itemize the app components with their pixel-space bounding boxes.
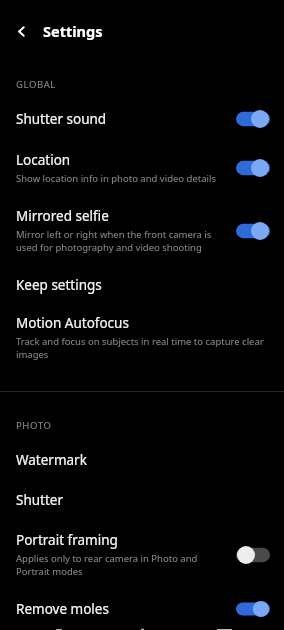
- button[interactable]: Shutter sound: [0, 103, 284, 141]
- staticText: Motion Autofocus: [16, 314, 129, 332]
- button[interactable]: Mirrored selfie: [0, 197, 284, 266]
- staticText: GLOBAL: [16, 78, 56, 91]
- button[interactable]: Remove moles: [0, 590, 284, 630]
- staticText: Remove moles: [16, 600, 109, 618]
- button[interactable]: [236, 221, 270, 241]
- staticText: Portrait framing: [16, 531, 118, 549]
- staticText: Mirrored selfie: [16, 207, 109, 225]
- staticText: Applies only to rear camera in Photo and…: [16, 552, 228, 578]
- button[interactable]: [236, 545, 270, 565]
- staticText: Mirror left or right when the front came…: [16, 228, 228, 254]
- button[interactable]: Watermark: [0, 445, 284, 481]
- button[interactable]: Motion Autofocus: [0, 306, 284, 373]
- button[interactable]: [236, 158, 270, 178]
- button[interactable]: Location: [0, 141, 284, 197]
- button[interactable]: Shutter: [0, 481, 284, 521]
- button[interactable]: Keep settings: [0, 266, 284, 306]
- staticText: Settings: [43, 21, 103, 41]
- button[interactable]: [236, 600, 270, 618]
- staticText: Show location info in photo and video de…: [16, 172, 216, 185]
- button[interactable]: [236, 109, 270, 129]
- staticText: Watermark: [16, 451, 87, 469]
- staticText: Track and focus on subjects in real time…: [16, 335, 270, 361]
- button[interactable]: Back: [8, 17, 36, 45]
- staticText: Location: [16, 151, 71, 169]
- staticText: Keep settings: [16, 276, 102, 294]
- staticText: Shutter sound: [16, 110, 107, 128]
- staticText: Shutter: [16, 491, 64, 509]
- staticText: PHOTO: [16, 419, 52, 432]
- button[interactable]: Portrait framing: [0, 521, 284, 590]
